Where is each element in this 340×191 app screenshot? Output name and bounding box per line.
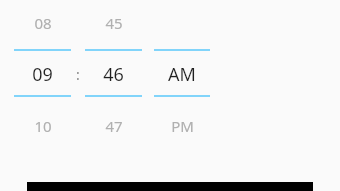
staticText: 08 [34, 13, 52, 33]
button[interactable]: Meridiem AM [154, 53, 210, 95]
staticText: 47 [105, 116, 123, 136]
button[interactable]: Minute previous 45 [85, 12, 142, 34]
staticText: 46 [103, 62, 124, 87]
button[interactable]: Meridiem PM [154, 115, 210, 137]
staticText: AM [168, 62, 196, 87]
staticText: 45 [105, 13, 123, 33]
button[interactable]: Minute 46 [85, 53, 142, 95]
staticText: : [76, 65, 80, 84]
button[interactable]: Hour next 10 [14, 115, 71, 137]
button[interactable]: Minute next 47 [85, 115, 142, 137]
button[interactable]: Hour 09 [14, 53, 71, 95]
staticText: 09 [32, 62, 53, 87]
staticText: PM [171, 116, 194, 136]
staticText: 10 [34, 116, 52, 136]
button[interactable]: Hour previous 08 [14, 12, 71, 34]
